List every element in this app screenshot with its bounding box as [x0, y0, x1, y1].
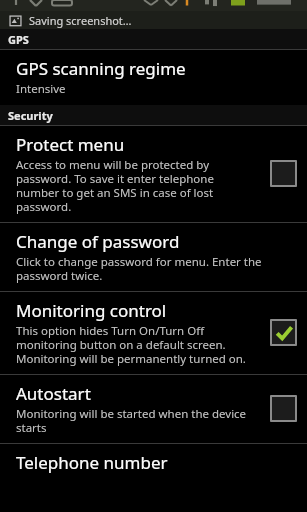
button[interactable]: Monitoring control — [0, 292, 307, 374]
staticText: Change of password — [16, 230, 180, 253]
staticText: GPS — [8, 32, 29, 47]
button[interactable]: Autostart — [0, 375, 307, 443]
button[interactable]: Change of password — [0, 223, 307, 291]
staticText: Click to change password for menu. Enter… — [16, 254, 297, 283]
button[interactable]: Monitoring control, checked — [270, 319, 297, 346]
staticText: Security — [8, 108, 53, 123]
staticText: Protect menu — [16, 133, 125, 156]
staticText: GPS scanning regime — [16, 57, 186, 80]
staticText: Monitoring will be started when the devi… — [16, 406, 260, 435]
button[interactable]: Telephone number — [0, 444, 307, 482]
staticText: Autostart — [16, 382, 91, 405]
button[interactable]: Saving screenshot… — [0, 11, 307, 29]
staticText: Intensive — [16, 81, 66, 97]
staticText: Access to menu will be protected by pass… — [16, 157, 260, 214]
staticText: Saving screenshot… — [29, 13, 132, 28]
button[interactable]: Protect menu — [0, 126, 307, 222]
staticText: Monitoring control — [16, 299, 167, 322]
button[interactable]: Protect menu, not checked — [270, 160, 297, 187]
staticText: Telephone number — [16, 451, 168, 474]
button[interactable]: Autostart, not checked — [270, 395, 297, 422]
button[interactable]: GPS scanning regime — [0, 50, 307, 105]
staticText: This option hides Turn On/Turn Off monit… — [16, 323, 260, 366]
